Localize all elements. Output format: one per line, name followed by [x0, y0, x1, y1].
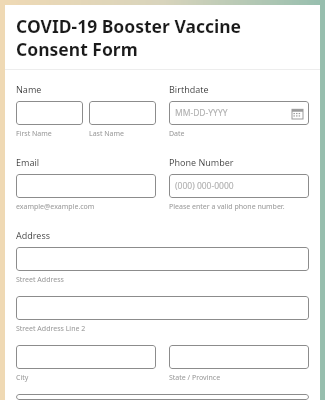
- staticText: Birthdate: [169, 83, 209, 95]
- staticText: MM-DD-YYYY: [175, 107, 292, 119]
- other: Open calendar picker: [292, 108, 303, 119]
- button[interactable]: [16, 247, 309, 271]
- button[interactable]: [16, 174, 156, 198]
- button[interactable]: [16, 345, 156, 369]
- staticText: City: [16, 373, 29, 383]
- button[interactable]: [16, 101, 83, 125]
- button[interactable]: (000) 000-0000: [169, 174, 309, 198]
- staticText: example@example.com: [16, 202, 95, 212]
- staticText: Date: [169, 129, 185, 139]
- button[interactable]: [16, 394, 309, 400]
- staticText: Street Address: [16, 275, 64, 285]
- staticText: Name: [16, 83, 42, 95]
- button[interactable]: [16, 296, 309, 320]
- staticText: (000) 000-0000: [175, 180, 303, 192]
- staticText: State / Province: [169, 373, 221, 383]
- staticText: Street Address Line 2: [16, 324, 86, 334]
- button[interactable]: [169, 345, 309, 369]
- staticText: Please enter a valid phone number.: [169, 202, 285, 212]
- staticText: COVID-19 Booster Vaccine Consent Form: [16, 14, 306, 61]
- staticText: First Name: [16, 129, 52, 139]
- staticText: Phone Number: [169, 156, 234, 168]
- button[interactable]: MM-DD-YYYY: [169, 101, 309, 125]
- button[interactable]: [89, 101, 156, 125]
- staticText: Address: [16, 229, 51, 241]
- staticText: Email: [16, 156, 40, 168]
- staticText: Last Name: [89, 129, 125, 139]
